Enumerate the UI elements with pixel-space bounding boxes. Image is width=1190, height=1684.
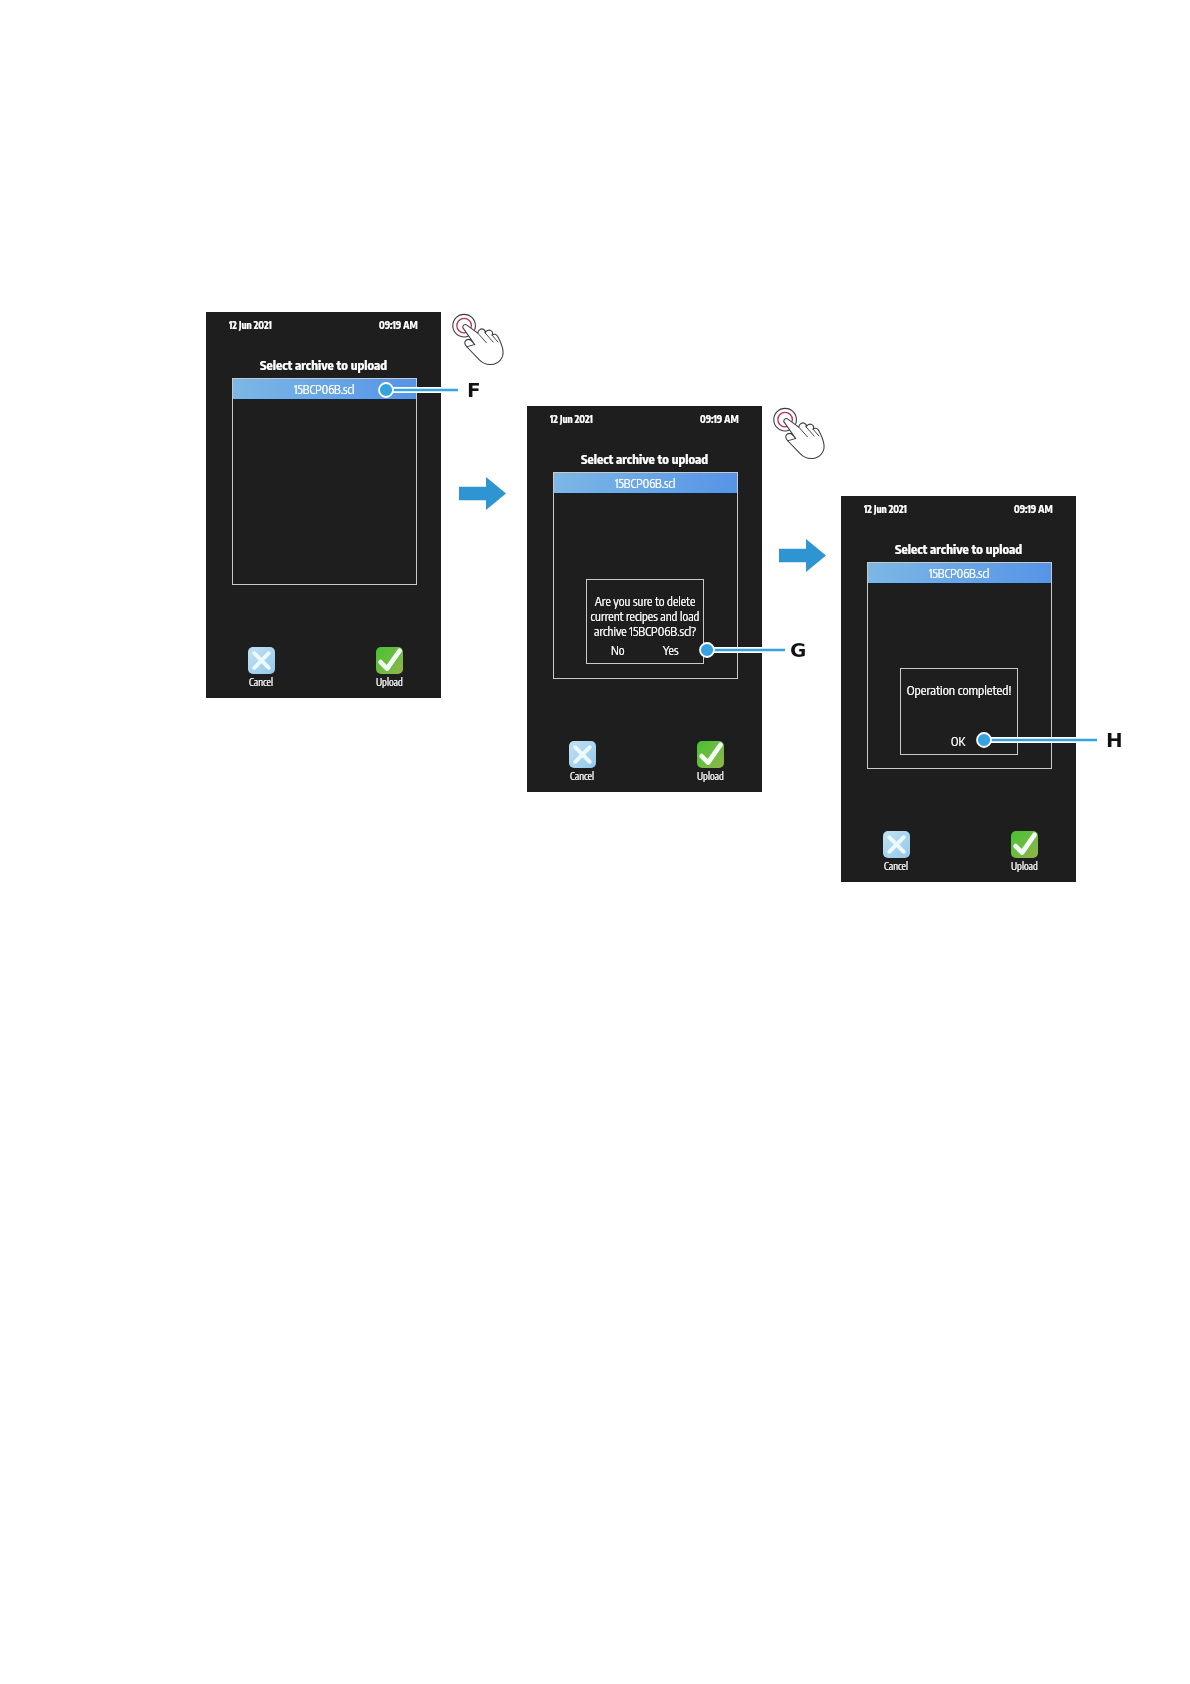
staticText: Upload — [376, 676, 403, 688]
button[interactable]: 15BCP06B.scl — [233, 379, 416, 399]
staticText: 12 Jun 2021 — [864, 503, 907, 515]
staticText: 15BCP06B.scl — [294, 382, 355, 397]
staticText: Select archive to upload — [260, 357, 388, 373]
button[interactable]: 15BCP06B.scl — [554, 473, 737, 493]
button[interactable]: Cancel — [241, 647, 281, 688]
staticText: 09:19 AM — [379, 319, 418, 331]
staticText: 15BCP06B.scl — [615, 476, 676, 491]
other: Next step — [459, 477, 506, 510]
staticText: 12 Jun 2021 — [229, 319, 272, 331]
staticText: Select archive to upload — [581, 451, 709, 467]
staticText: 15BCP06B.scl — [929, 566, 990, 581]
button[interactable]: OK — [943, 732, 974, 750]
other: Next step — [779, 539, 826, 572]
other: Tap gesture — [447, 308, 505, 366]
staticText: Cancel — [884, 860, 908, 872]
staticText: Select archive to upload — [895, 541, 1023, 557]
button[interactable]: Upload — [369, 647, 409, 688]
staticText: Cancel — [249, 676, 273, 688]
staticText: F — [467, 378, 481, 401]
button[interactable]: Cancel — [562, 741, 602, 782]
staticText: Are you sure to delete current recipes a… — [586, 594, 704, 639]
staticText: Upload — [1011, 860, 1038, 872]
staticText: 09:19 AM — [1014, 503, 1053, 515]
staticText: Upload — [697, 770, 724, 782]
staticText: G — [790, 638, 807, 661]
button[interactable]: Upload — [690, 741, 730, 782]
button[interactable]: Cancel — [876, 831, 916, 872]
button[interactable]: Yes — [655, 641, 686, 659]
other: Tap gesture — [768, 402, 826, 460]
staticText: No — [611, 643, 625, 658]
button[interactable]: Upload — [1004, 831, 1044, 872]
staticText: Yes — [663, 643, 679, 658]
staticText: H — [1106, 728, 1123, 751]
staticText: 09:19 AM — [700, 413, 739, 425]
button[interactable]: 15BCP06B.scl — [868, 563, 1051, 583]
staticText: Operation completed! — [900, 682, 1018, 698]
staticText: 12 Jun 2021 — [550, 413, 593, 425]
staticText: OK — [951, 734, 966, 749]
staticText: Cancel — [570, 770, 594, 782]
button[interactable]: No — [602, 641, 633, 659]
